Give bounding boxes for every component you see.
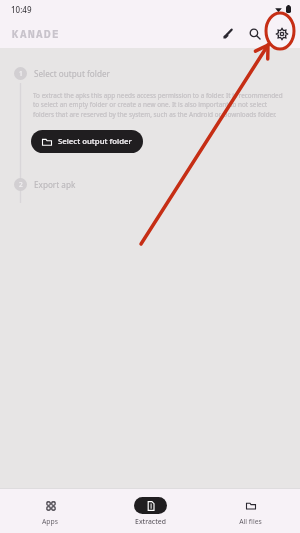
button[interactable]: All files <box>200 489 300 533</box>
staticText: KANADE <box>12 26 60 41</box>
staticText: 2 <box>19 180 23 189</box>
staticText: Export apk <box>34 179 76 190</box>
staticText: Select output folder <box>34 68 110 79</box>
button[interactable]: Search <box>241 20 268 47</box>
button[interactable]: Select output folder <box>31 130 143 153</box>
button[interactable]: Settings <box>268 20 295 47</box>
staticText: Select output folder <box>58 136 132 147</box>
staticText: To extract the apks this app needs acces… <box>33 91 285 119</box>
button[interactable]: Apps <box>0 489 100 533</box>
button[interactable]: Theme <box>214 20 241 47</box>
staticText: All files <box>239 517 262 526</box>
staticText: Apps <box>42 517 58 526</box>
staticText: 1 <box>19 69 23 78</box>
button[interactable]: Extracted <box>100 489 200 533</box>
staticText: Extracted <box>135 517 166 526</box>
staticText: 10:49 <box>11 4 32 15</box>
